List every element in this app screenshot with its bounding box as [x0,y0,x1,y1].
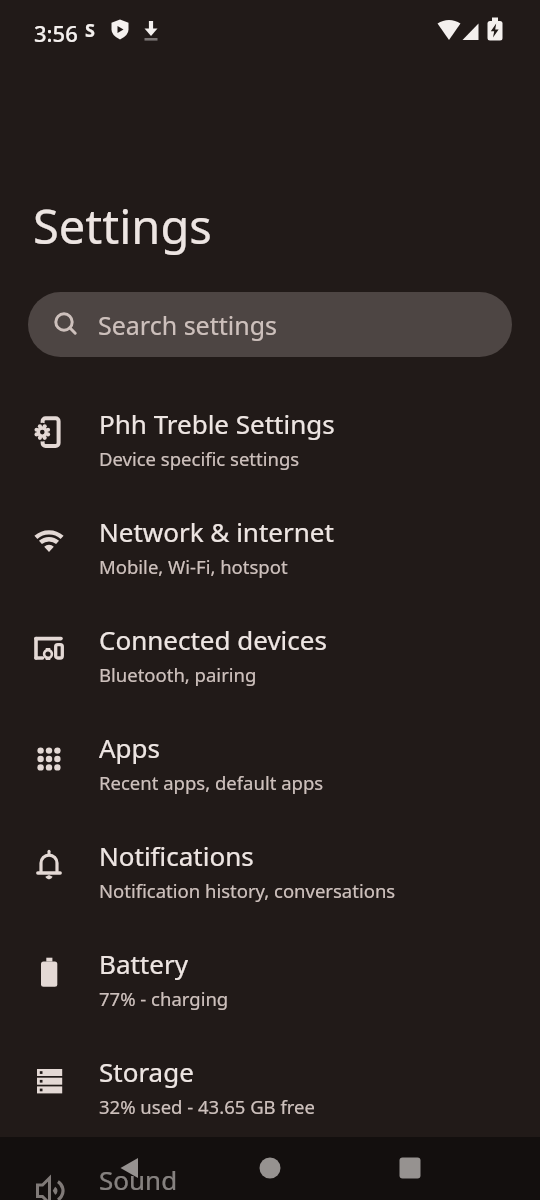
staticText: Phh Treble Settings [99,406,335,441]
button[interactable]: Search settings [28,292,512,357]
button[interactable] [106,1144,154,1192]
staticText: Settings [33,194,212,258]
button[interactable]: Storage [0,1032,540,1140]
button[interactable]: Sound [0,1140,540,1200]
staticText: Recent apps, default apps [99,770,324,795]
staticText: Bluetooth, pairing [99,662,257,687]
staticText: Notifications [99,838,254,873]
staticText: Storage [99,1054,194,1089]
button[interactable]: Connected devices [0,600,540,708]
staticText: Battery [99,946,188,981]
button[interactable]: Network & internet [0,492,540,600]
button[interactable]: Apps [0,708,540,816]
staticText: S [85,18,95,43]
button[interactable] [246,1144,294,1192]
staticText: Mobile, Wi-Fi, hotspot [99,554,288,579]
staticText: Device specific settings [99,446,300,471]
button[interactable] [386,1144,434,1192]
staticText: Connected devices [99,622,327,657]
staticText: Notification history, conversations [99,878,396,903]
staticText: Search settings [98,308,278,342]
staticText: 77% - charging [99,986,229,1011]
staticText: Sound [99,1162,178,1197]
staticText: 3:56 [34,18,78,48]
button[interactable]: Battery [0,924,540,1032]
button[interactable]: Phh Treble Settings [0,384,540,492]
staticText: 32% used - 43.65 GB free [99,1094,315,1119]
staticText: Network & internet [99,514,334,549]
staticText: Apps [99,730,161,765]
button[interactable]: Notifications [0,816,540,924]
